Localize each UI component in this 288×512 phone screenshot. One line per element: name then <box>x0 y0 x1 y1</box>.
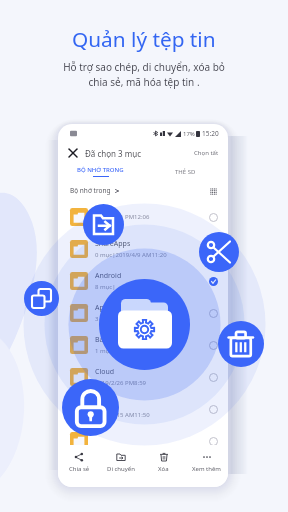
button[interactable]: Grid view <box>208 186 218 196</box>
staticText: 3 <box>95 315 100 323</box>
staticText: 1 mục|20 <box>95 347 123 355</box>
staticText: Cloud <box>95 367 115 377</box>
staticText: Quản lý tệp tin <box>72 25 216 53</box>
staticText: 60 <box>95 399 104 409</box>
button[interactable]: Xóa <box>142 445 185 480</box>
button[interactable]: Copy <box>24 281 59 316</box>
button[interactable]: 2019/3/21 PM12:06 <box>70 201 218 233</box>
staticText: Chia sẻ <box>69 465 90 473</box>
button[interactable]: Chọn tất <box>194 149 219 157</box>
staticText: Xem thêm <box>192 465 221 473</box>
staticText: 15:20 <box>202 129 219 138</box>
button[interactable]: Close <box>67 147 79 159</box>
button[interactable]: Xem thêm <box>185 445 228 480</box>
staticText: 0 mục|2019/4/9 AM11:20 <box>95 251 167 259</box>
staticText: 17% <box>183 130 195 138</box>
button[interactable]: Ap <box>70 297 218 329</box>
button[interactable]: Encrypt <box>62 379 119 436</box>
button[interactable]: Baidu <box>70 329 218 361</box>
staticText: Android <box>95 271 122 281</box>
staticText: 2019/2/15 AM11:50 <box>95 411 150 419</box>
staticText: Baidu <box>95 335 114 345</box>
staticText: Bộ nhớ trong <box>70 186 111 195</box>
button[interactable]: Cut <box>199 232 239 272</box>
button[interactable]: ShareApps <box>70 233 218 265</box>
button[interactable]: Delete <box>218 321 264 367</box>
staticText: THẺ SD <box>175 168 196 176</box>
staticText: 2019/3/21 PM12:06 <box>95 213 150 221</box>
button[interactable]: Manage files <box>99 279 190 370</box>
staticText: 8 mục| <box>95 283 116 291</box>
button[interactable]: THẺ SD <box>143 163 228 180</box>
button[interactable]: Move <box>83 204 124 245</box>
staticText: Đã chọn 3 mục <box>85 148 141 159</box>
button[interactable]: 60 <box>70 393 218 425</box>
button[interactable] <box>70 425 218 457</box>
staticText: Di chuyển <box>107 465 135 473</box>
button[interactable]: Bộ nhớ trong <box>70 186 111 195</box>
button[interactable]: Di chuyển <box>100 445 142 480</box>
button[interactable]: Android <box>70 265 218 297</box>
button[interactable]: BỘ NHỚ TRONG <box>58 163 143 180</box>
staticText: 2019/2/26 PM8:59 <box>95 379 147 387</box>
staticText: ShareApps <box>95 239 131 249</box>
button[interactable]: Cloud <box>70 361 218 393</box>
staticText: Hỗ trợ sao chép, di chuyển, xóa bỏ chia … <box>63 60 225 89</box>
button[interactable]: Chia sẻ <box>58 445 100 480</box>
staticText: Chọn tất <box>194 149 219 157</box>
staticText: Ap <box>95 303 104 313</box>
staticText: Xóa <box>158 465 169 473</box>
staticText: BỘ NHỚ TRONG <box>77 166 124 174</box>
